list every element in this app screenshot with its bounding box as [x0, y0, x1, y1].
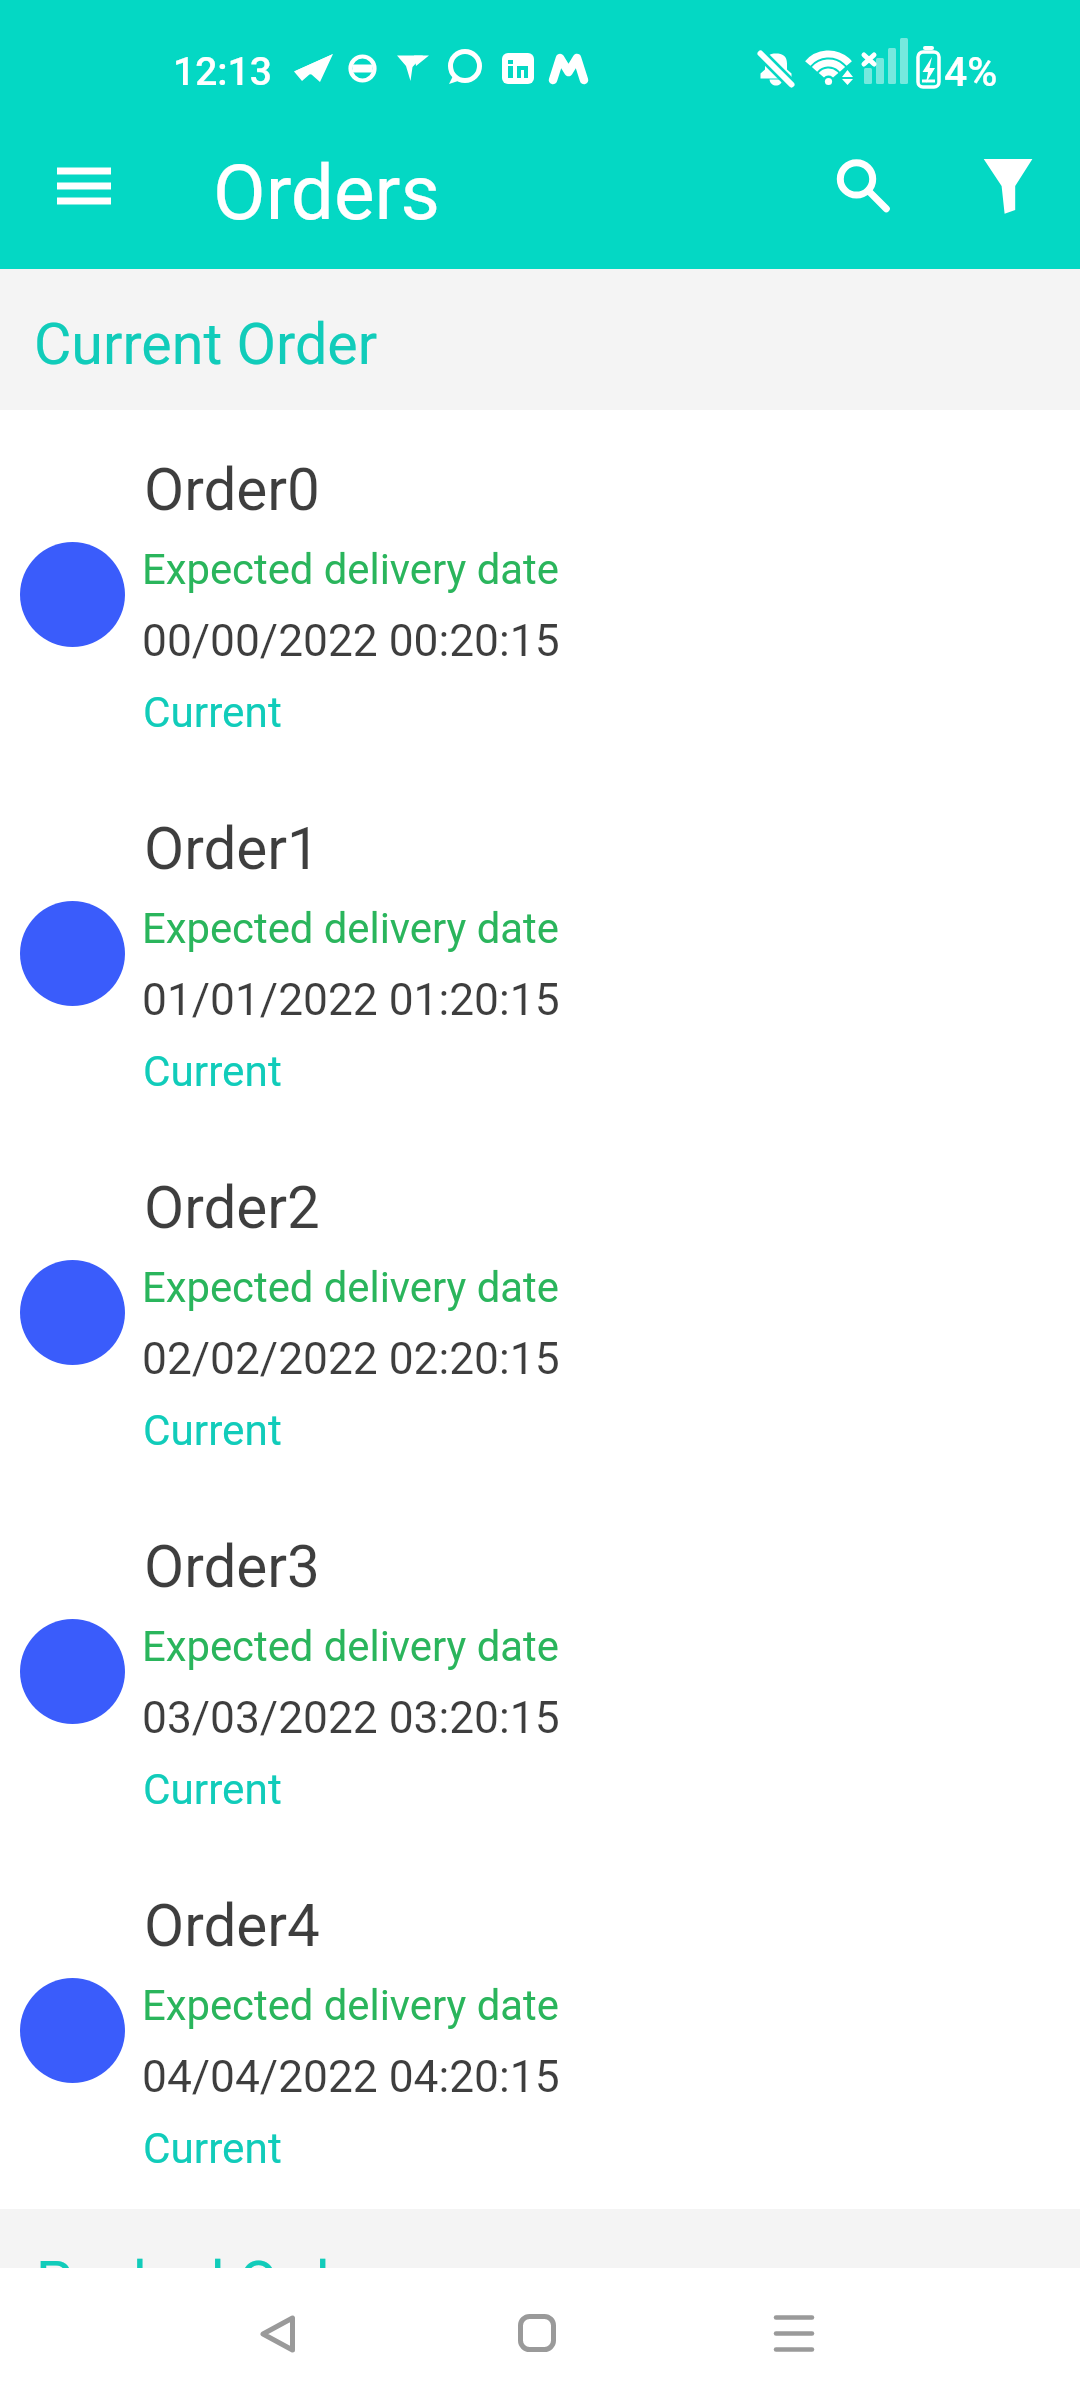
staticText: Order3	[144, 1533, 320, 1601]
staticText: Expected delivery date	[142, 1981, 559, 2030]
staticText: Packed Order	[36, 2249, 380, 2268]
staticText: 12:13	[173, 49, 272, 95]
staticText: Expected delivery date	[142, 1622, 559, 1671]
staticText: Orders	[213, 148, 440, 238]
staticText: 02/02/2022 02:20:15	[142, 1333, 560, 1385]
button[interactable]: Order0	[0, 411, 1080, 771]
staticText: Order0	[144, 456, 320, 524]
staticText: 04/04/2022 04:20:15	[142, 2051, 560, 2103]
button[interactable]: Search	[809, 131, 905, 227]
staticText: Expected delivery date	[142, 545, 559, 594]
staticText: 03/03/2022 03:20:15	[142, 1692, 560, 1744]
staticText: Order1	[144, 815, 320, 883]
button[interactable]: Recent apps	[746, 2286, 842, 2382]
button[interactable]: Back	[230, 2286, 326, 2382]
button[interactable]: Filter	[960, 131, 1056, 227]
staticText: Order2	[144, 1174, 320, 1242]
staticText: Order4	[144, 1892, 320, 1960]
staticText: Expected delivery date	[142, 904, 559, 953]
staticText: Expected delivery date	[142, 1263, 559, 1312]
staticText: Current	[143, 2124, 282, 2174]
button[interactable]: Order2	[0, 1129, 1080, 1489]
button[interactable]: Home	[488, 2286, 584, 2382]
staticText: Current	[143, 688, 282, 738]
staticText: 4%	[944, 48, 998, 96]
staticText: Current	[143, 1047, 282, 1097]
staticText: 01/01/2022 01:20:15	[142, 974, 560, 1026]
staticText: Current	[143, 1406, 282, 1456]
button[interactable]: Order4	[0, 1847, 1080, 2207]
staticText: Current	[143, 1765, 282, 1815]
button[interactable]: Order3	[0, 1488, 1080, 1848]
button[interactable]: Order1	[0, 770, 1080, 1130]
staticText: 00/00/2022 00:20:15	[142, 615, 560, 667]
staticText: Current Order	[34, 311, 378, 378]
button[interactable]: Open navigation menu	[40, 137, 136, 233]
